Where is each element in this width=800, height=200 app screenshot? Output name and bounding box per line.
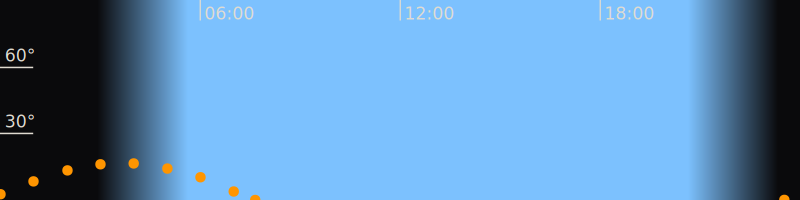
staticText: 12:00 — [404, 3, 454, 24]
staticText: 30° — [5, 111, 36, 132]
staticText: 06:00 — [204, 3, 254, 24]
staticText: 18:00 — [604, 3, 654, 24]
staticText: 60° — [5, 45, 36, 66]
